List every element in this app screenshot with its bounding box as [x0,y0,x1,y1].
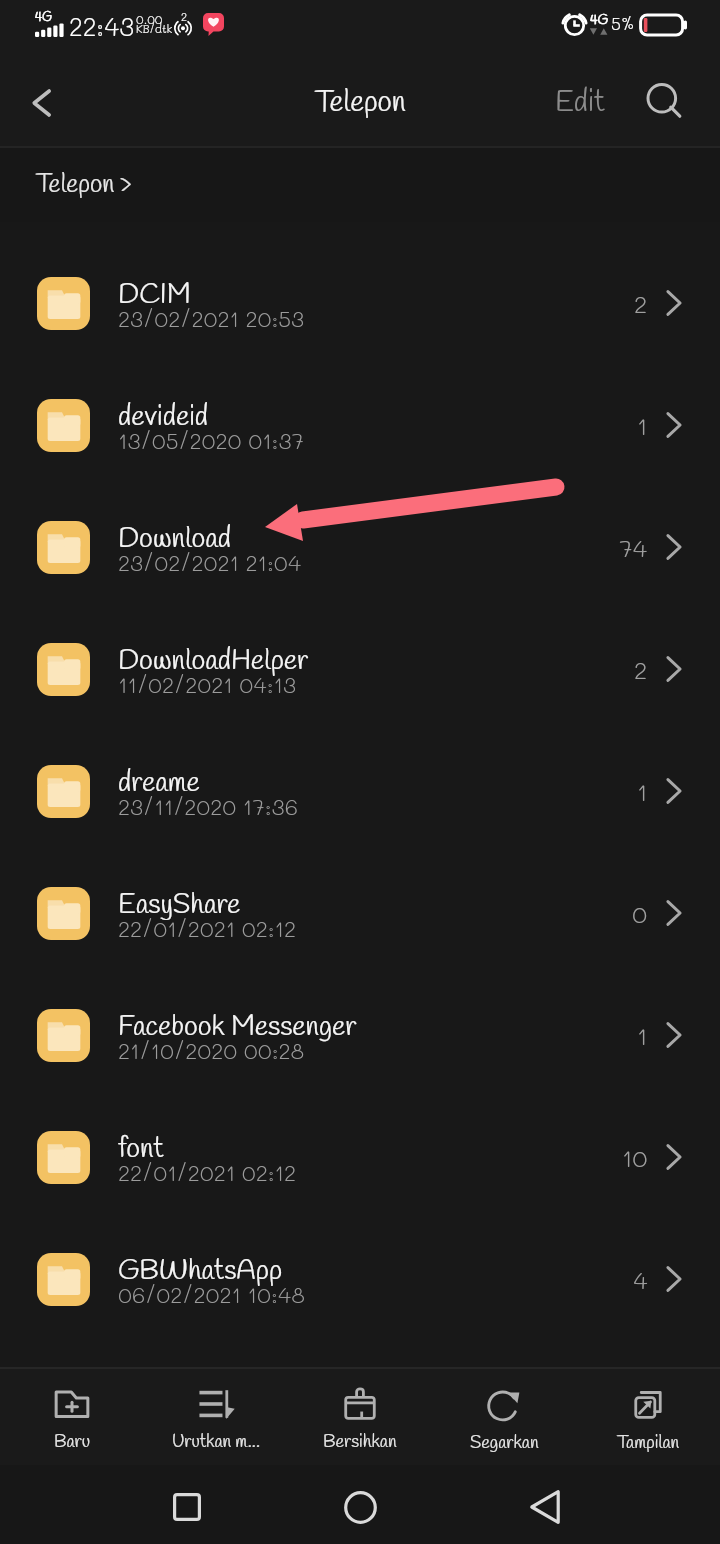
button[interactable]: GBWhatsApp [0,1218,720,1340]
staticText: 11/02/2021 04:13 [118,670,297,699]
button[interactable]: Back [12,73,72,133]
staticText: 2 [181,9,188,23]
staticText: Facebook Messenger [118,1009,357,1046]
staticText: KB/dtk [136,21,173,35]
staticText: 1 [637,776,648,807]
button[interactable]: DCIM [0,242,720,364]
staticText: 4G [35,9,52,26]
staticText: GBWhatsApp [118,1253,283,1290]
button[interactable]: Segarkan [432,1384,576,1451]
staticText: Edit [555,83,605,123]
button[interactable]: Tampilan [576,1384,720,1451]
staticText: font [118,1131,164,1168]
button[interactable]: Back [505,1476,585,1538]
staticText: DownloadHelper [118,643,309,680]
staticText: 2 [634,654,648,685]
staticText: Download [118,521,232,558]
staticText: 0 [632,898,648,929]
button[interactable]: Urutkan m... [144,1385,288,1450]
button[interactable]: Recent apps [147,1476,227,1538]
button[interactable]: Facebook Messenger [0,974,720,1096]
button[interactable]: EasyShare [0,852,720,974]
staticText: devideid [118,399,208,436]
button[interactable]: Bersihkan [288,1384,432,1450]
staticText: 10 [622,1142,648,1173]
staticText: 22:43 [69,10,135,42]
staticText: Urutkan m... [172,1430,260,1454]
staticText: 06/02/2021 10:48 [118,1280,305,1309]
staticText: 5% [611,12,635,34]
staticText: 0.00 [136,11,163,27]
staticText: 21/10/2020 00:28 [118,1036,305,1065]
staticText: 23/11/2020 17:36 [118,792,298,821]
staticText: EasyShare [118,887,241,924]
staticText: 4 [633,1264,648,1295]
button[interactable]: devideid [0,364,720,486]
button[interactable]: DownloadHelper [0,608,720,730]
button[interactable]: dreame [0,730,720,852]
staticText: Bersihkan [323,1430,397,1454]
button[interactable]: Baru [0,1385,144,1450]
staticText: Telepon > [36,169,132,202]
staticText: DCIM [118,277,191,314]
staticText: dreame [118,765,200,802]
button[interactable]: font [0,1096,720,1218]
button[interactable]: Download [0,486,720,608]
staticText: 22/01/2021 02:12 [118,1158,297,1187]
staticText: 13/05/2020 01:37 [118,426,304,455]
staticText: 23/02/2021 21:04 [118,548,302,577]
staticText: 4G [590,11,609,30]
button[interactable]: Edit [538,71,622,135]
staticText: 2 [634,288,648,319]
staticText: 23/02/2021 20:53 [118,304,305,333]
staticText: Baru [54,1430,91,1454]
staticText: Tampilan [617,1431,680,1455]
button[interactable]: Search [633,71,697,135]
staticText: 74 [619,532,648,563]
staticText: 1 [637,410,648,441]
button[interactable]: Home [320,1476,400,1538]
staticText: 1 [637,1020,648,1051]
staticText: Segarkan [470,1431,539,1455]
button[interactable]: Telepon > [36,169,132,202]
staticText: 22/01/2021 02:12 [118,914,297,943]
staticText: Telepon [315,84,406,123]
